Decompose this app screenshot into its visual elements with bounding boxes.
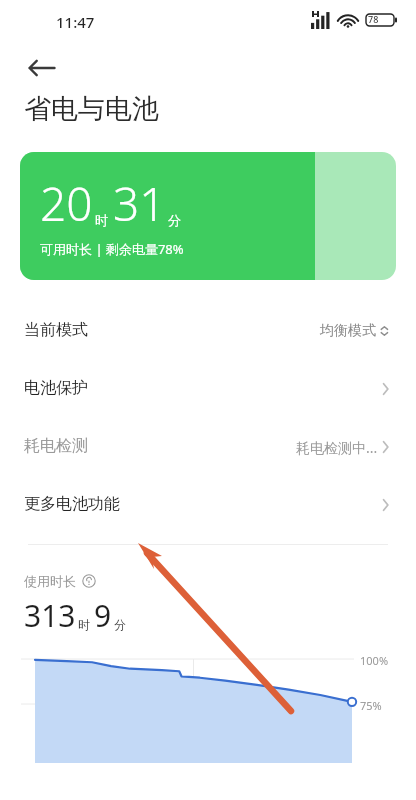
staticText: 78 <box>368 13 379 25</box>
staticText: 当前模式 <box>24 320 88 340</box>
staticText: 分 <box>114 617 126 632</box>
staticText: 时 <box>95 212 108 228</box>
staticText: 可用时长 | 剩余电量78% <box>40 240 184 258</box>
staticText: 313 <box>24 595 76 636</box>
staticText: 11:47 <box>56 12 95 32</box>
button[interactable]: 电池保护 <box>0 360 416 418</box>
staticText: 更多电池功能 <box>24 494 120 514</box>
button[interactable]: 耗电检测 <box>0 418 416 476</box>
staticText: 耗电检测中... <box>296 438 378 457</box>
staticText: 均衡模式 <box>320 322 376 340</box>
staticText: 31 <box>113 172 166 235</box>
staticText: 75% <box>360 698 382 713</box>
staticText: 分 <box>168 212 181 228</box>
button[interactable]: 当前模式 <box>0 302 416 360</box>
staticText: 9 <box>94 595 112 636</box>
staticText: 电池保护 <box>24 378 88 398</box>
staticText: 耗电检测 <box>24 436 88 456</box>
button[interactable]: Back <box>18 44 66 92</box>
staticText: 时 <box>78 617 90 632</box>
staticText: 100% <box>360 653 389 668</box>
staticText: 20 <box>40 172 93 235</box>
button[interactable]: 20 <box>20 152 396 280</box>
button[interactable]: 更多电池功能 <box>0 476 416 534</box>
staticText: 省电与电池 <box>24 92 159 126</box>
staticText: 使用时长 <box>24 573 76 589</box>
